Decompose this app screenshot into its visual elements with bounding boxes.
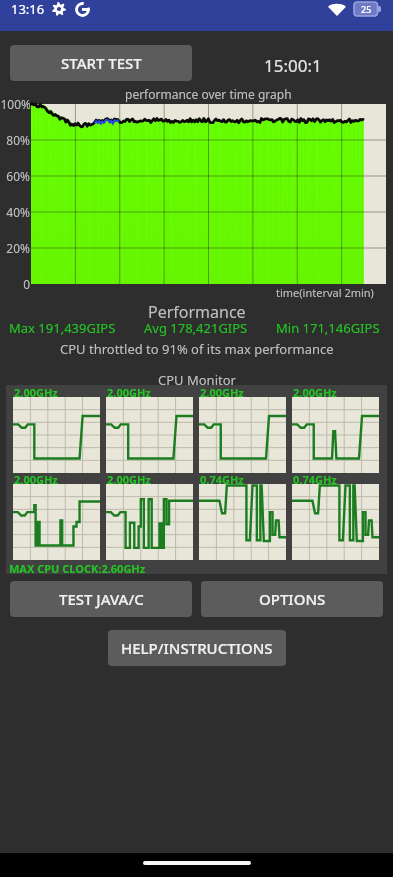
- staticText: 2.00GHz: [14, 472, 58, 487]
- staticText: Max 191,439GIPS: [9, 319, 116, 337]
- button[interactable]: OPTIONS: [201, 581, 383, 617]
- other: Google: [75, 2, 90, 17]
- staticText: 2.00GHz: [14, 385, 58, 400]
- staticText: 80%: [0, 132, 30, 148]
- staticText: 13:16: [11, 0, 45, 18]
- staticText: OPTIONS: [259, 589, 326, 609]
- staticText: 0.74GHz: [200, 472, 244, 487]
- staticText: Min 171,146GIPS: [276, 319, 380, 337]
- staticText: 40%: [0, 204, 30, 220]
- staticText: 20%: [0, 240, 30, 256]
- staticText: 2.00GHz: [107, 472, 151, 487]
- staticText: 15:00:1: [264, 54, 322, 77]
- staticText: 2.00GHz: [200, 385, 244, 400]
- other: Wi-Fi: [328, 3, 346, 16]
- button[interactable]: START TEST: [10, 45, 192, 81]
- staticText: 0: [0, 276, 30, 292]
- staticText: HELP/INSTRUCTIONS: [121, 638, 273, 658]
- other: Battery 25%: [354, 2, 381, 16]
- staticText: 25: [361, 3, 372, 15]
- staticText: CPU Monitor: [158, 371, 236, 389]
- staticText: 60%: [0, 168, 30, 184]
- button[interactable]: HELP/INSTRUCTIONS: [108, 630, 286, 666]
- staticText: 2.00GHz: [293, 385, 337, 400]
- staticText: Avg 178,421GIPS: [144, 319, 248, 337]
- button[interactable]: TEST JAVA/C: [10, 581, 192, 617]
- staticText: Performance: [148, 301, 246, 323]
- staticText: 0.74GHz: [293, 472, 337, 487]
- staticText: START TEST: [61, 53, 142, 73]
- staticText: 2.00GHz: [107, 385, 151, 400]
- staticText: TEST JAVA/C: [59, 589, 144, 609]
- staticText: MAX CPU CLOCK:2.60GHz: [9, 561, 146, 576]
- staticText: performance over time graph: [125, 86, 292, 102]
- staticText: 100%: [0, 96, 30, 112]
- staticText: time(interval 2min): [276, 285, 374, 300]
- other: Settings: [52, 2, 66, 16]
- staticText: CPU throttled to 91% of its max performa…: [60, 340, 334, 358]
